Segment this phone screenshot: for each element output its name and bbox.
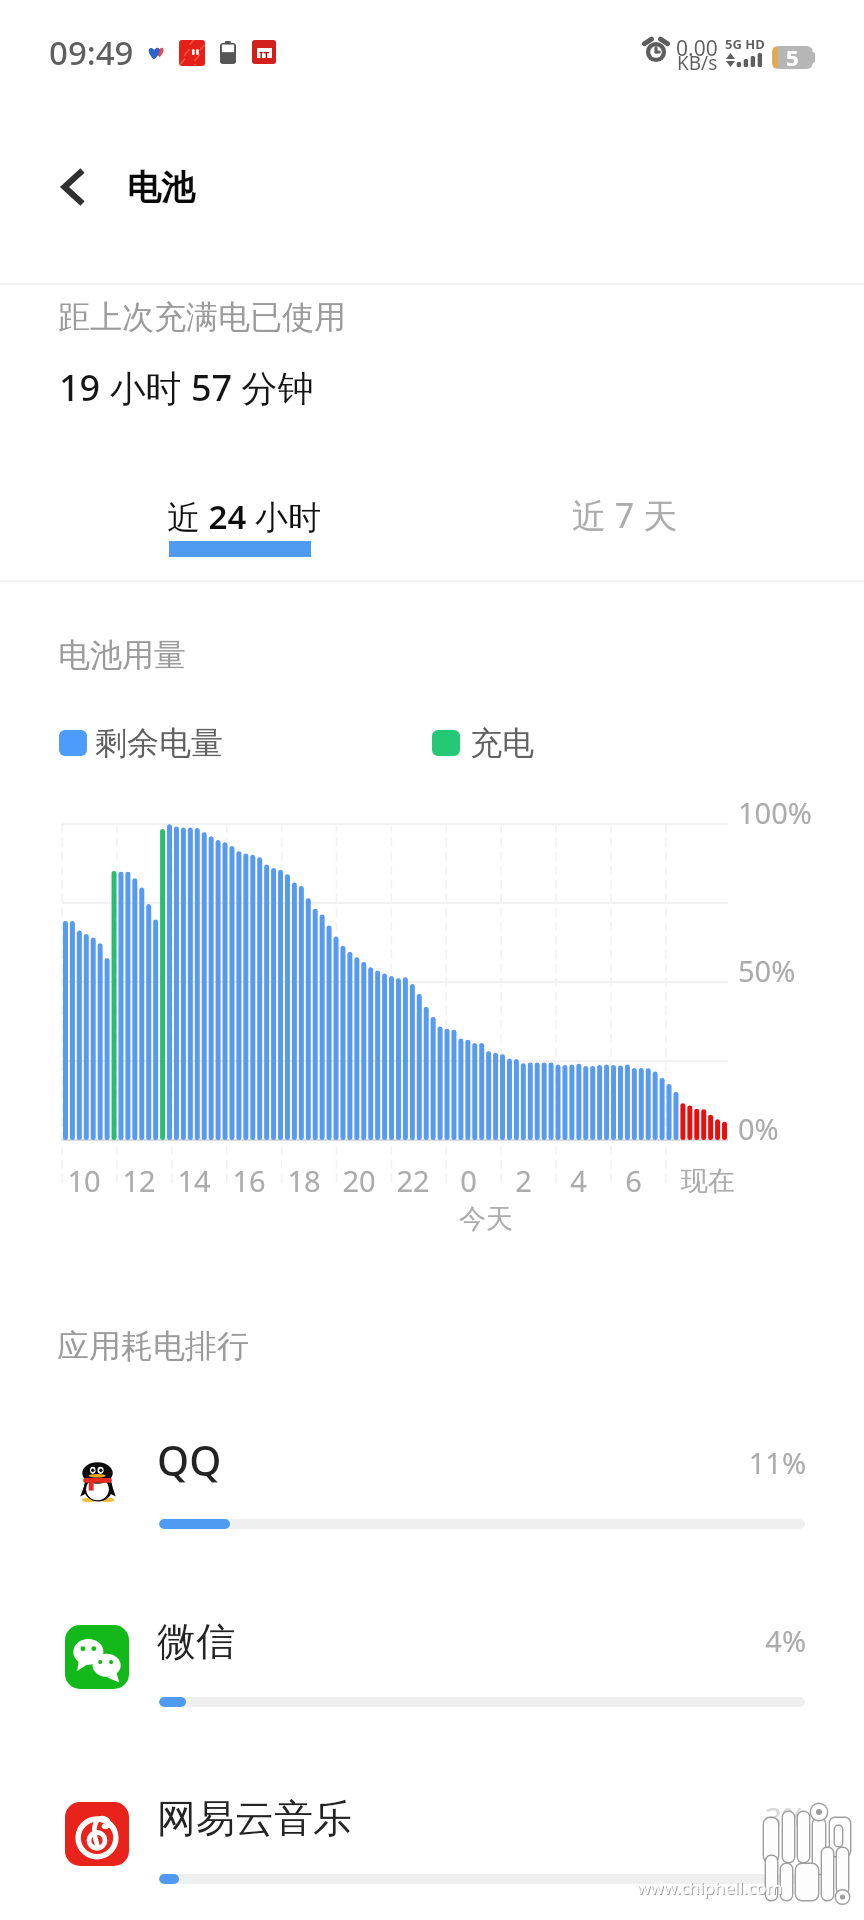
staticText: 100%	[738, 793, 812, 832]
staticText: 近 24 小时	[167, 494, 321, 539]
button[interactable]: 近 24 小时	[84, 480, 404, 572]
staticText: 10	[67, 1161, 101, 1200]
staticText: 距上次充满电已使用	[58, 297, 346, 337]
staticText: www.chiphell.com	[638, 1877, 784, 1900]
button[interactable]: Back	[38, 140, 108, 234]
staticText: IT	[259, 48, 270, 58]
button[interactable]: 微信	[0, 1588, 864, 1738]
staticText: 16	[232, 1161, 266, 1200]
staticText: 12	[122, 1161, 156, 1200]
staticText: KB/s	[677, 50, 718, 76]
staticText: 0%	[738, 1109, 779, 1148]
staticText: 今天	[459, 1202, 513, 1236]
staticText: 充电	[470, 723, 534, 763]
staticText: QQ	[157, 1432, 222, 1488]
button[interactable]: QQ	[0, 1410, 864, 1560]
staticText: 剩余电量	[95, 723, 223, 763]
staticText: 电池用量	[58, 635, 186, 675]
staticText: 20	[342, 1161, 376, 1200]
staticText: 6	[625, 1161, 642, 1200]
staticText: 3%	[765, 1798, 806, 1837]
staticText: 0	[460, 1161, 477, 1200]
staticText: 14	[177, 1161, 211, 1200]
staticText: 电池	[127, 166, 195, 209]
staticText: 近 7 天	[572, 492, 678, 538]
staticText: 微信	[157, 1617, 235, 1666]
staticText: www.chiphell.com	[637, 1876, 783, 1899]
staticText: 5	[786, 42, 799, 72]
staticText: 09:49	[49, 30, 134, 75]
staticText: 2	[515, 1161, 532, 1200]
staticText: 现在	[681, 1164, 735, 1198]
staticText: 0.00	[676, 34, 718, 63]
staticText: 4	[570, 1161, 587, 1200]
staticText: 50%	[738, 951, 796, 990]
staticText: 19 小时 57 分钟	[59, 363, 314, 412]
staticText: 应用耗电排行	[57, 1326, 249, 1366]
button[interactable]: 近 7 天	[465, 478, 785, 570]
staticText: 22	[396, 1161, 430, 1200]
staticText: 网易云音乐	[157, 1794, 352, 1843]
staticText: 18	[287, 1161, 321, 1200]
staticText: 5G HD	[725, 35, 765, 53]
staticText: 4%	[765, 1621, 806, 1660]
button[interactable]: 网易云音乐	[0, 1765, 864, 1915]
staticText: 11%	[748, 1443, 806, 1482]
